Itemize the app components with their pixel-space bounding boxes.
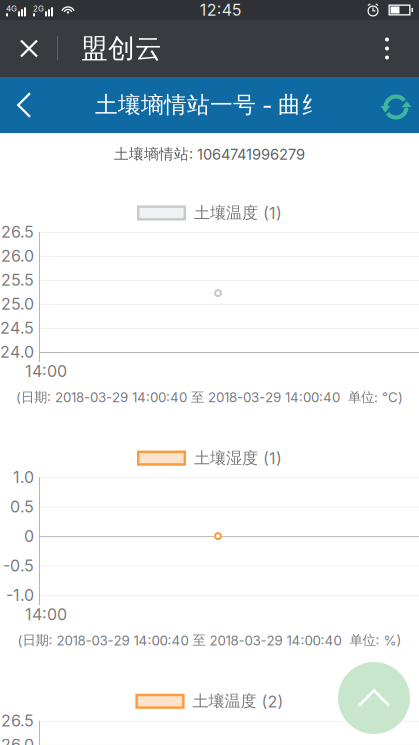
staticText: 土壤温度 (1) <box>194 203 282 223</box>
staticText: 26.0 <box>1 735 34 745</box>
staticText: (日期: 2018-03-29 14:00:40 至 2018-03-29 14… <box>16 389 403 406</box>
staticText: 24.0 <box>0 342 34 362</box>
button[interactable]: Back <box>8 83 40 127</box>
button[interactable]: More options <box>372 28 402 68</box>
staticText: 土壤墒情站一号 - 曲纟 <box>95 91 324 119</box>
staticText: 土壤温度 (2) <box>192 691 283 711</box>
staticText: 26.5 <box>1 711 34 730</box>
staticText: 24.5 <box>0 318 34 338</box>
staticText: 2G <box>33 4 44 13</box>
staticText: 0 <box>24 526 34 546</box>
staticText: 26.5 <box>1 222 34 242</box>
staticText: 14:00 <box>25 605 67 624</box>
staticText: 土壤墒情站: 1064741996279 <box>114 145 305 163</box>
staticText: 25.5 <box>1 270 34 290</box>
staticText: 盟创云 <box>81 32 162 65</box>
staticText: -0.5 <box>3 556 34 575</box>
staticText: 25.0 <box>1 294 34 314</box>
staticText: (日期: 2018-03-29 14:00:40 至 2018-03-29 14… <box>17 632 401 649</box>
staticText: 土壤湿度 (1) <box>194 448 282 468</box>
staticText: 12:45 <box>200 0 242 20</box>
staticText: 26.0 <box>1 246 34 266</box>
staticText: 14:00 <box>25 361 67 381</box>
staticText: 1.0 <box>13 467 34 487</box>
staticText: -1.0 <box>6 585 34 605</box>
staticText: 4G <box>6 4 17 13</box>
staticText: 0.5 <box>10 497 34 516</box>
button[interactable]: Refresh <box>376 83 416 127</box>
button[interactable]: Close <box>9 28 49 68</box>
button[interactable]: Scroll to top <box>338 662 410 734</box>
